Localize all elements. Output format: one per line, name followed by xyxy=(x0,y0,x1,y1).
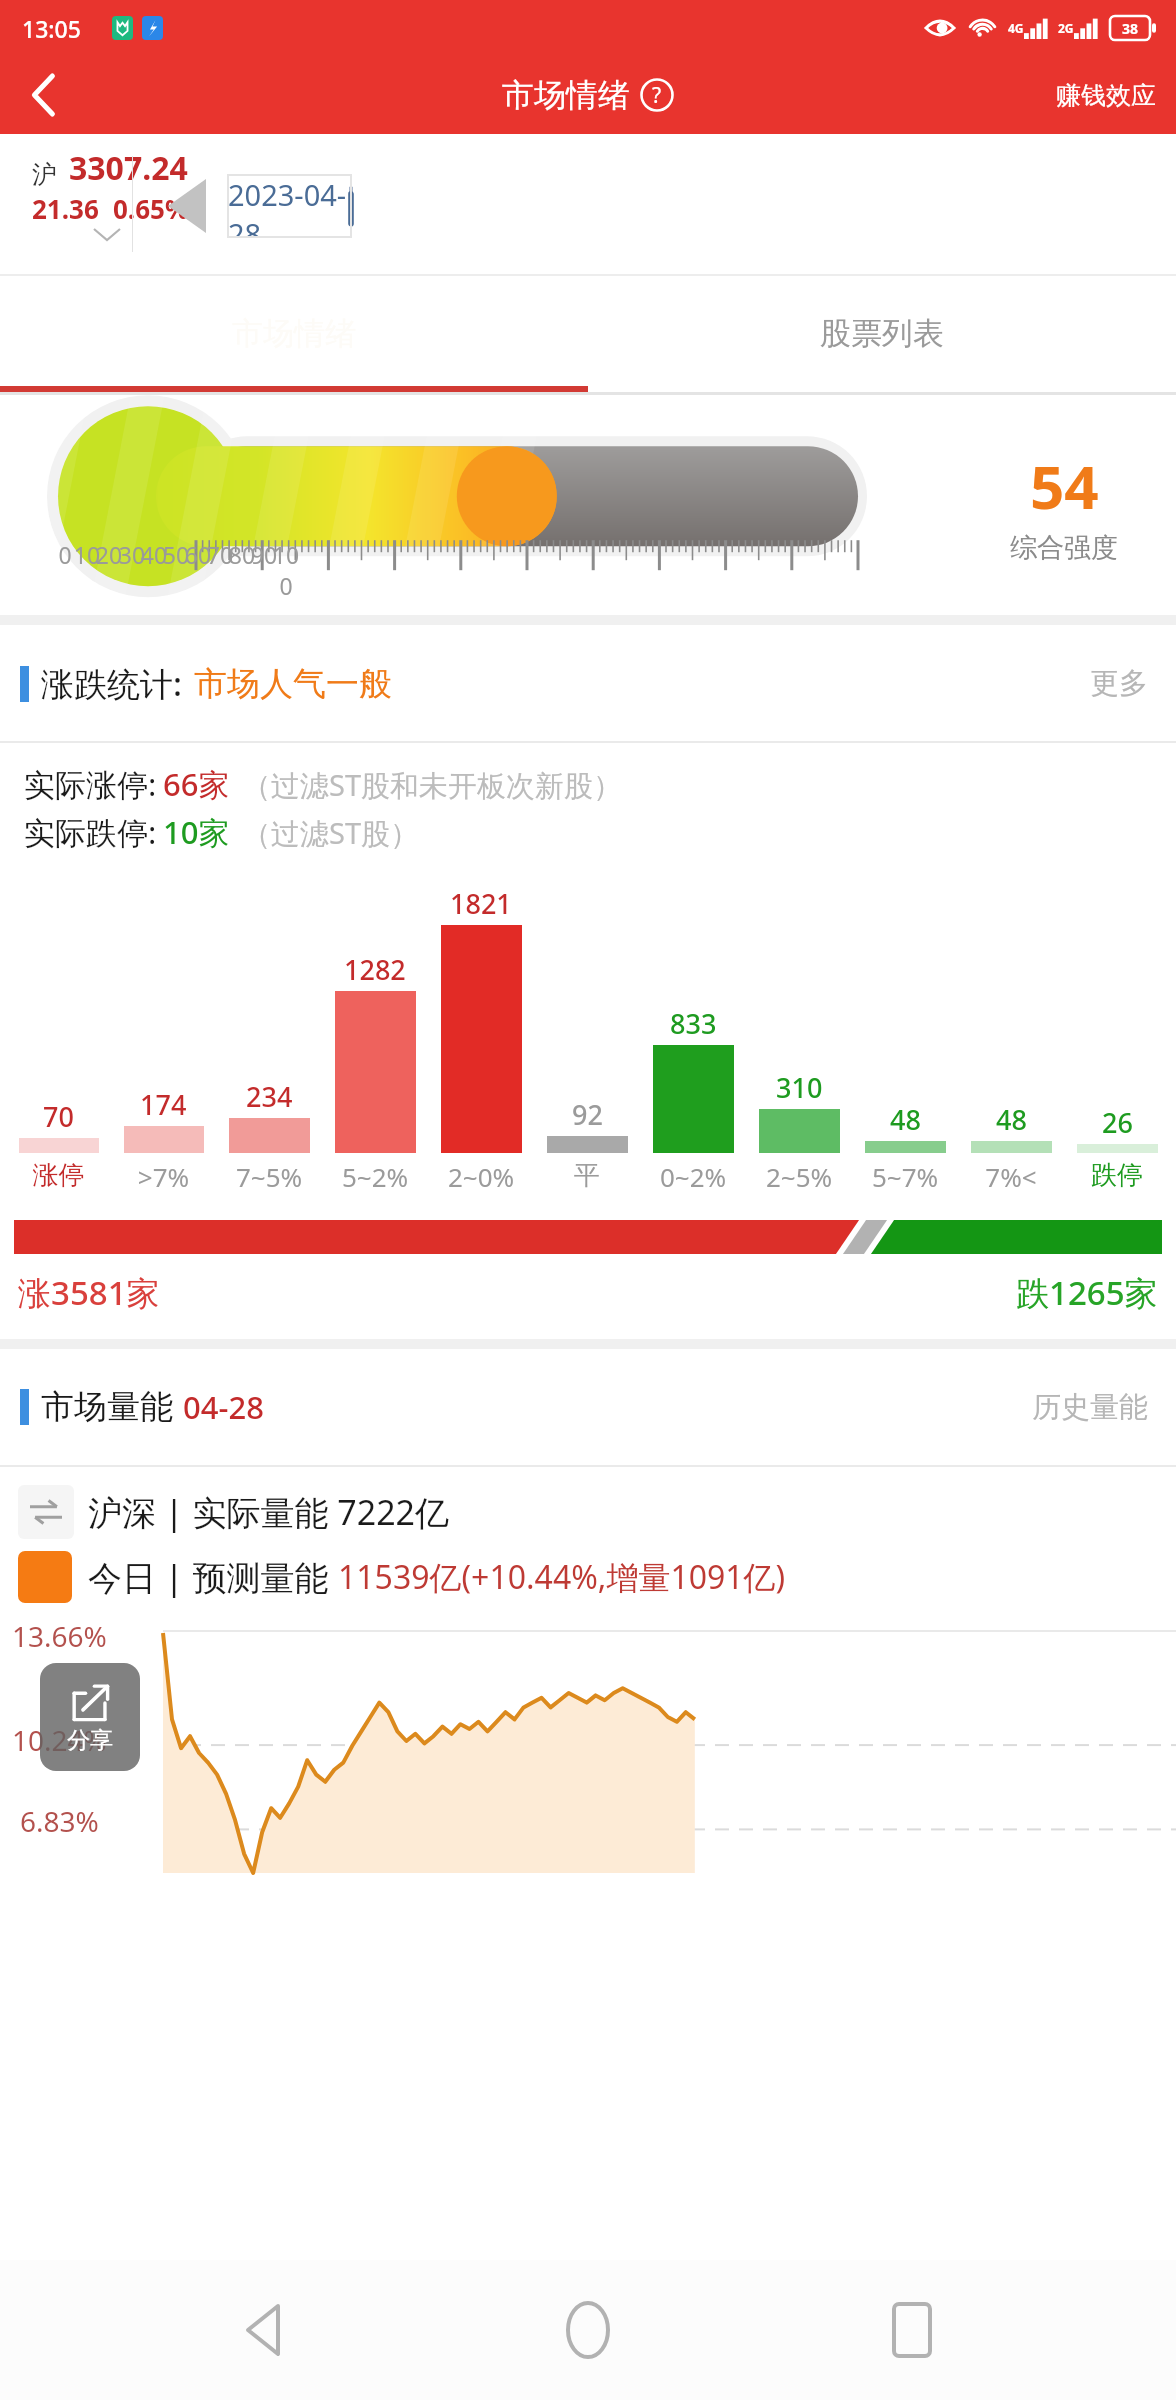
staticText: 04-28 xyxy=(183,1386,264,1428)
button[interactable]: 今日 | 预测量能 xyxy=(18,1551,786,1603)
staticText: >7% xyxy=(111,1159,216,1194)
staticText: 21.36 xyxy=(32,191,99,226)
staticText: 平 xyxy=(534,1159,640,1192)
staticText: 跌停 xyxy=(1064,1159,1170,1192)
staticText: 分享 xyxy=(67,1726,113,1755)
staticText: 0~2% xyxy=(640,1159,746,1194)
button[interactable]: Share xyxy=(40,1663,140,1771)
staticText: 2~0% xyxy=(428,1159,534,1194)
staticText: 48 xyxy=(890,1101,921,1138)
button[interactable]: 市场情绪 xyxy=(502,75,674,115)
staticText: 26 xyxy=(1102,1104,1133,1141)
staticText: ? xyxy=(652,81,662,110)
staticText: 3307.24 xyxy=(69,146,188,190)
staticText: 11539亿(+10.44%,增量1091亿) xyxy=(338,1555,786,1599)
staticText: 今日 | 预测量能 xyxy=(88,1554,338,1600)
staticText: 310 xyxy=(776,1069,823,1106)
button[interactable]: 2023-04-28 xyxy=(228,175,351,237)
staticText: 2G xyxy=(1058,20,1074,36)
staticText: 100 xyxy=(270,539,302,601)
staticText: 6.83% xyxy=(20,1802,99,1840)
staticText: 涨跌统计: xyxy=(41,661,182,706)
staticText: 54 xyxy=(1030,445,1099,527)
staticText: 70 xyxy=(204,539,236,570)
staticText: 0 xyxy=(49,539,81,570)
staticText: 40 xyxy=(138,539,170,570)
button[interactable]: 赚钱效应 xyxy=(1056,80,1156,111)
staticText: 70 xyxy=(43,1098,74,1135)
staticText: （过滤ST股和未开板次新股） xyxy=(242,765,623,805)
button[interactable]: 沪深 | 实际量能 7222亿 xyxy=(18,1485,450,1539)
staticText: 涨3581家 xyxy=(18,1270,160,1315)
staticText: 92 xyxy=(572,1096,603,1133)
staticText: 30 xyxy=(116,539,148,570)
staticText: 赚钱效应 xyxy=(1056,80,1156,111)
staticText: 66家 xyxy=(163,763,230,805)
staticText: （过滤ST股） xyxy=(242,813,420,853)
staticText: 10家 xyxy=(163,811,230,853)
staticText: 13:05 xyxy=(22,13,81,44)
staticText: 市场人气一般 xyxy=(194,663,392,705)
staticText: 涨停 xyxy=(6,1159,111,1192)
staticText: 4G xyxy=(1008,20,1024,36)
staticText: 5~7% xyxy=(852,1159,958,1194)
staticText: 90 xyxy=(248,539,280,570)
staticText: 48 xyxy=(996,1101,1027,1138)
button[interactable]: Previous day xyxy=(168,179,206,233)
button[interactable]: 历史量能 xyxy=(1032,1389,1148,1426)
staticText: 20 xyxy=(93,539,125,570)
staticText: 0.65% xyxy=(113,191,189,226)
staticText: 市场情绪 xyxy=(232,314,356,353)
staticText: 5~2% xyxy=(322,1159,428,1194)
staticText: 60 xyxy=(182,539,214,570)
staticText: 174 xyxy=(140,1086,187,1123)
button[interactable]: Back xyxy=(12,63,76,127)
staticText: 市场情绪 xyxy=(502,75,630,115)
staticText: 833 xyxy=(670,1005,717,1042)
staticText: 实际涨停: xyxy=(24,763,157,805)
staticText: 50 xyxy=(160,539,192,570)
staticText: 市场量能 xyxy=(41,1386,173,1428)
staticText: 综合强度 xyxy=(1010,531,1118,565)
button[interactable]: 沪 xyxy=(32,146,189,240)
staticText: 沪深 | 实际量能 7222亿 xyxy=(88,1489,450,1535)
staticText: 1282 xyxy=(344,951,406,988)
staticText: 80 xyxy=(226,539,258,570)
staticText: 跌1265家 xyxy=(1016,1270,1158,1315)
staticText: 10.24% xyxy=(12,1721,107,1759)
button[interactable]: Home xyxy=(528,2270,648,2390)
staticText: 2~5% xyxy=(746,1159,852,1194)
staticText: 10 xyxy=(71,539,103,570)
staticText: 234 xyxy=(246,1078,293,1115)
staticText: 7~5% xyxy=(216,1159,322,1194)
staticText: 38 xyxy=(1122,19,1139,38)
staticText: 1821 xyxy=(450,885,512,922)
staticText: 实际跌停: xyxy=(24,811,157,853)
staticText: 7%< xyxy=(958,1159,1064,1194)
button[interactable]: 市场情绪 xyxy=(0,274,588,392)
button[interactable]: Recents xyxy=(852,2270,972,2390)
staticText: 股票列表 xyxy=(820,314,944,353)
button[interactable]: Back xyxy=(204,2270,324,2390)
staticText: 13.66% xyxy=(12,1617,107,1655)
staticText: 2023-04-28 xyxy=(228,175,351,237)
staticText: 沪 xyxy=(32,159,57,190)
staticText: 更多 xyxy=(1090,665,1148,702)
button[interactable]: 股票列表 xyxy=(588,274,1176,392)
button[interactable]: 更多 xyxy=(1090,665,1148,702)
staticText: 历史量能 xyxy=(1032,1389,1148,1426)
